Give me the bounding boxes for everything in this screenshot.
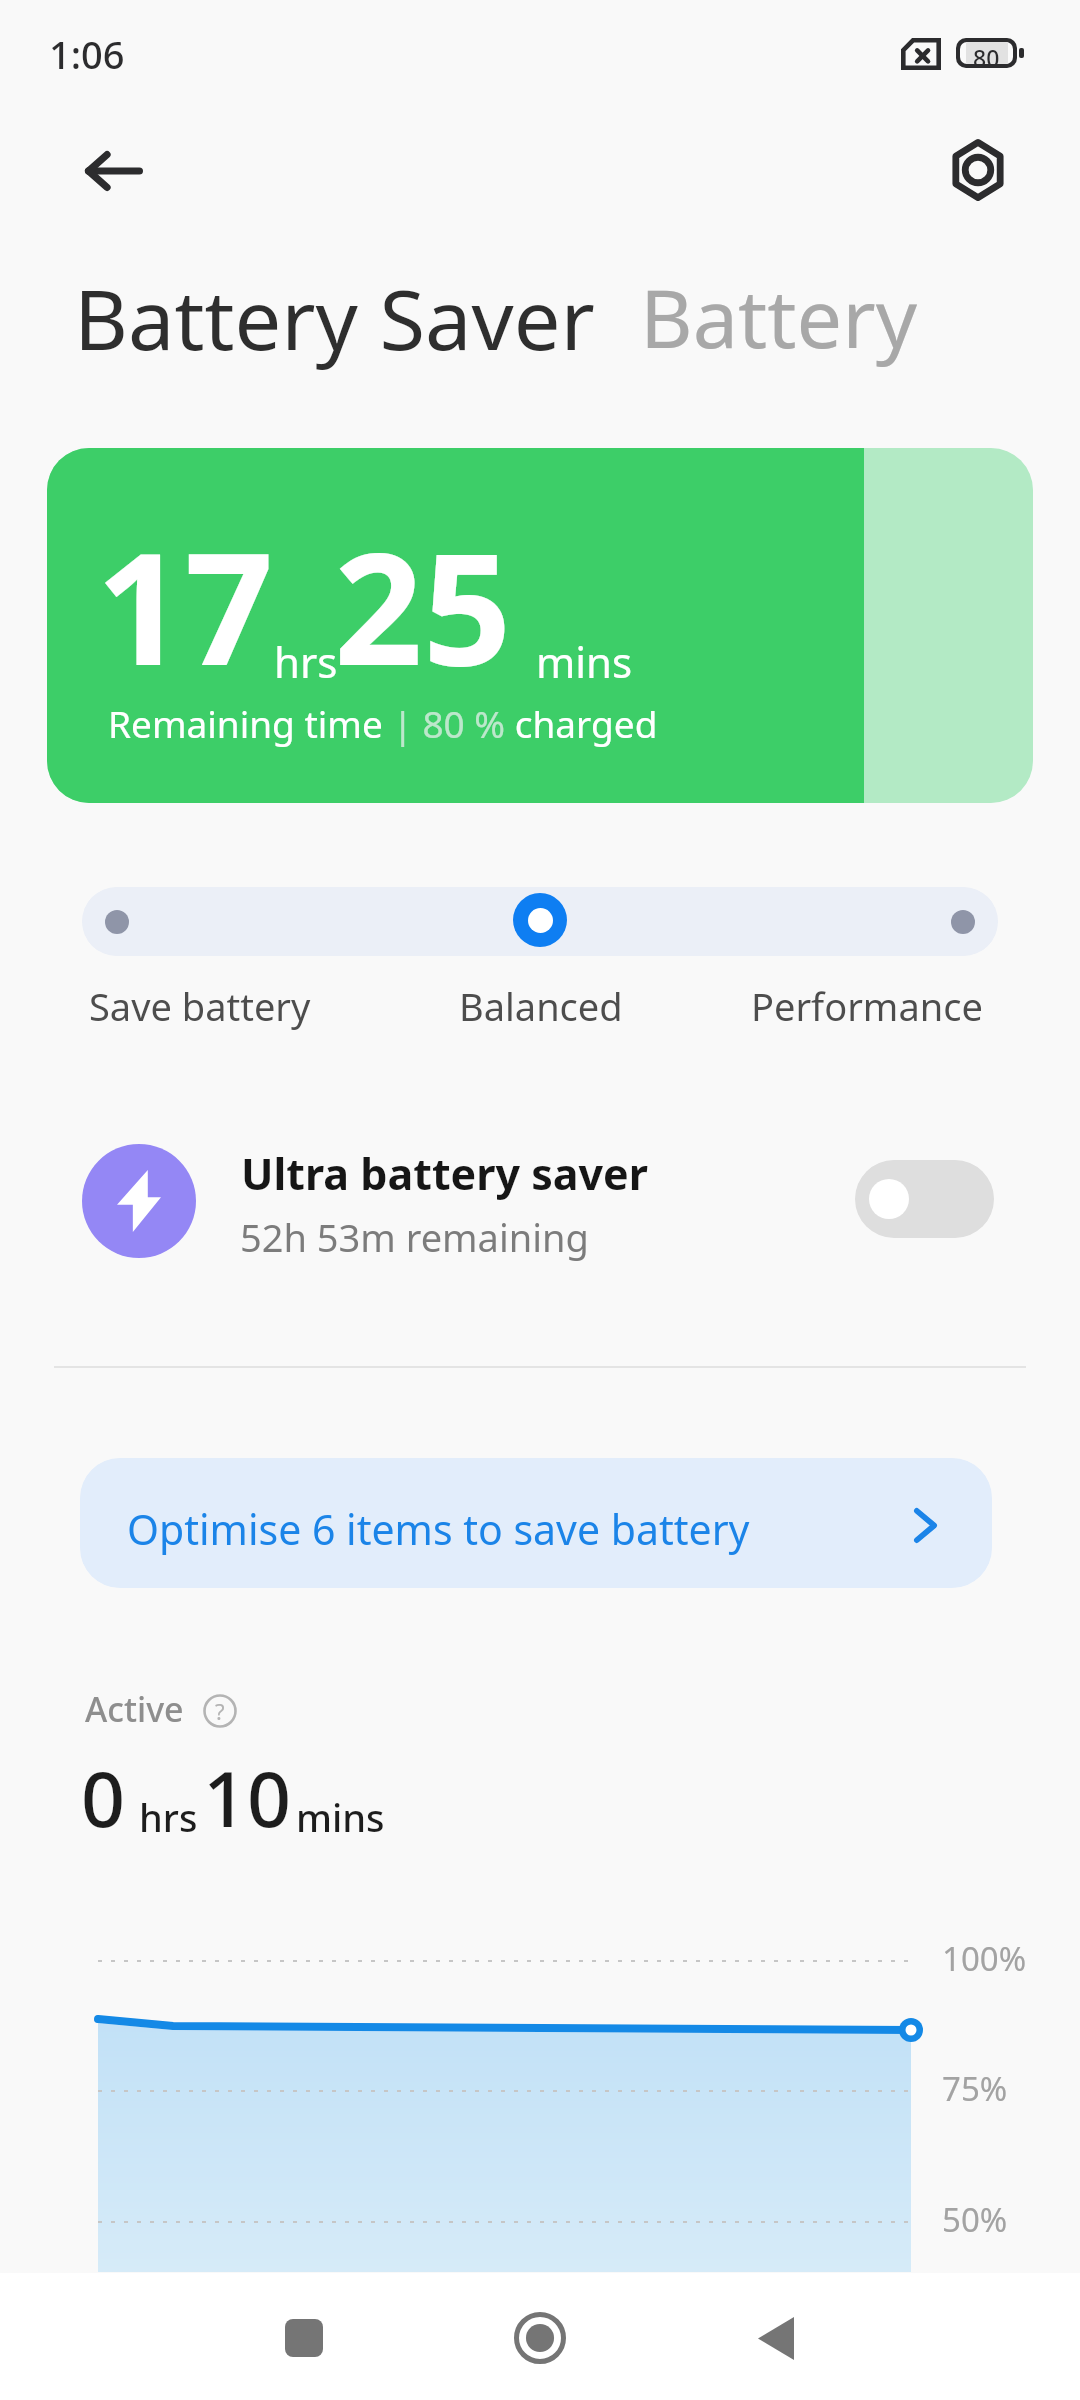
other: Battery level chart [0, 1930, 1080, 2280]
button[interactable]: Help [203, 1694, 237, 1728]
staticText: 17 [96, 499, 274, 710]
button[interactable]: Performance mode slider [82, 887, 998, 956]
staticText: Battery [640, 261, 918, 371]
staticText: 0 [81, 1745, 126, 1850]
staticText: Ultra battery saver [241, 1144, 648, 1203]
button[interactable]: Back [64, 121, 164, 221]
staticText: Active [85, 1686, 184, 1732]
staticText: mins [536, 633, 633, 690]
button[interactable]: Back [706, 2297, 846, 2379]
button[interactable]: Battery [630, 251, 930, 371]
button[interactable]: Balanced [445, 966, 637, 1046]
staticText: 10 [203, 1745, 292, 1850]
button[interactable]: Recents [234, 2297, 374, 2379]
staticText: 1:06 [49, 28, 125, 80]
staticText: hrs [139, 1791, 198, 1843]
button[interactable]: Home [470, 2297, 610, 2379]
staticText: hrs [274, 633, 338, 690]
button[interactable]: Save battery [75, 966, 325, 1046]
staticText: mins [296, 1791, 385, 1843]
staticText: 25 [334, 499, 512, 710]
staticText: 80 [973, 42, 1000, 64]
staticText: Performance [751, 980, 983, 1032]
button[interactable]: Settings [928, 120, 1028, 220]
button[interactable]: 17 [47, 448, 1033, 803]
staticText: ? [215, 1696, 225, 1726]
button[interactable]: Optimise 6 items to save battery [80, 1458, 992, 1588]
staticText: 50% [942, 2197, 1008, 2242]
button[interactable]: Performance [737, 966, 997, 1046]
button[interactable]: Battery Saver [64, 251, 604, 371]
staticText: 100% [942, 1936, 1027, 1981]
staticText: 52h 53m remaining [240, 1211, 589, 1263]
staticText: Save battery [89, 980, 311, 1032]
staticText: Battery Saver [74, 261, 595, 374]
staticText: Optimise 6 items to save battery [127, 1501, 750, 1557]
button[interactable]: Ultra battery saver toggle [855, 1160, 994, 1238]
staticText: Remaining time | 80 % charged [108, 698, 658, 748]
button[interactable]: Balanced mode [513, 893, 567, 947]
staticText: Balanced [459, 980, 623, 1032]
staticText: 75% [942, 2066, 1008, 2111]
button[interactable] [0, 1136, 1080, 1266]
